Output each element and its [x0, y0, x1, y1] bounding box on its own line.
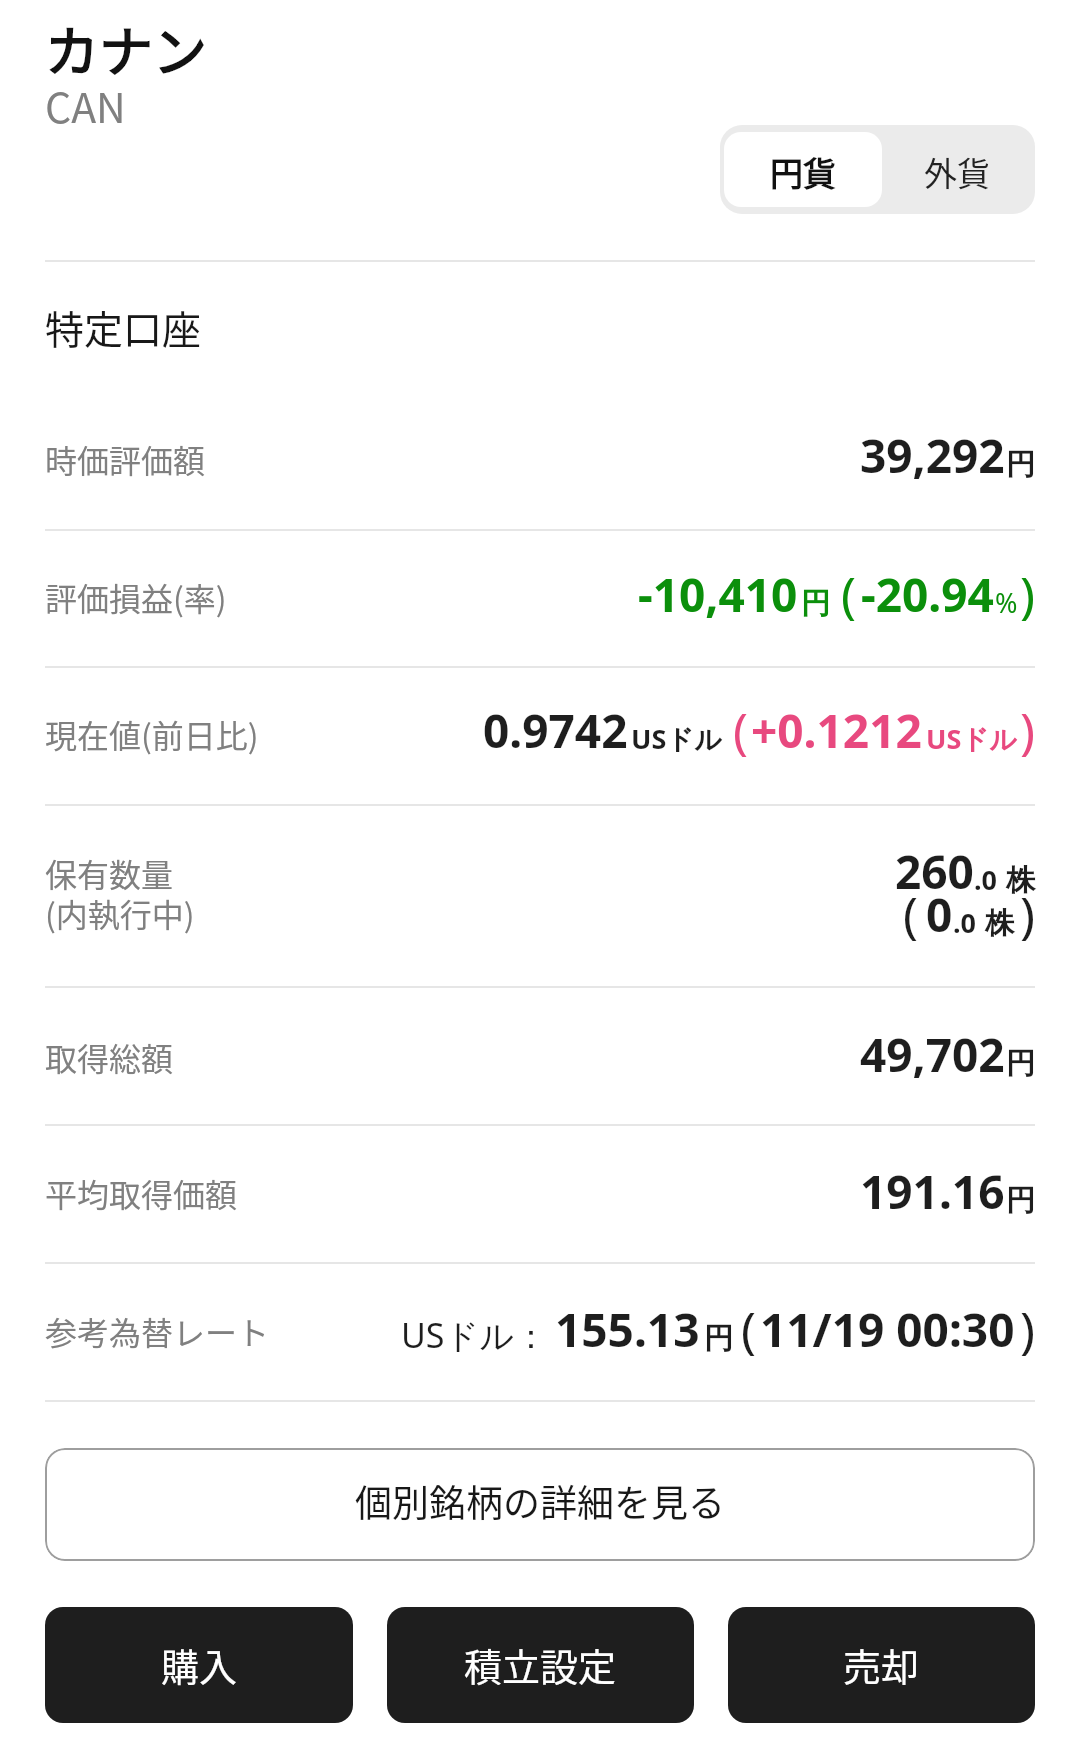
staticText: 191.16 [860, 1160, 1005, 1223]
button[interactable]: 購入 [45, 1607, 353, 1723]
staticText: 平均取得価額 [45, 1170, 238, 1216]
staticText: +0.1212 [751, 699, 922, 762]
staticText: .0 [953, 904, 977, 941]
staticText: 株 [985, 905, 1014, 942]
staticText: 11/19 00:30 [760, 1298, 1015, 1361]
staticText: 0 [926, 883, 953, 946]
staticText: ) [1020, 560, 1035, 628]
staticText: 39,292 [860, 424, 1005, 487]
staticText: 株 [1006, 862, 1035, 899]
staticText: 円貨 [770, 148, 836, 196]
staticText: 個別銘柄の詳細を見る [355, 1474, 725, 1528]
staticText: -10,410 [638, 563, 798, 626]
staticText: ) [1020, 880, 1035, 948]
staticText: 積立設定 [464, 1637, 617, 1692]
staticText: 円 [1006, 446, 1035, 483]
staticText: 0.9742 [483, 699, 628, 762]
staticText: USドル： [401, 1312, 549, 1358]
staticText: USドル [631, 720, 722, 757]
button[interactable]: 売却 [728, 1607, 1035, 1723]
staticText: 49,702 [860, 1023, 1005, 1086]
staticText: 155.13 [555, 1298, 700, 1361]
staticText: USドル [926, 720, 1017, 757]
staticText: ( [841, 560, 856, 628]
button[interactable]: 円貨 [724, 132, 882, 207]
staticText: 時価評価額 [45, 436, 206, 482]
staticText: 円 [801, 585, 830, 622]
staticText: ( [741, 1295, 756, 1363]
staticText: ) [1020, 1295, 1035, 1363]
staticText: 外貨 [924, 148, 990, 196]
staticText: 保有数量 [45, 850, 174, 896]
staticText: 取得総額 [45, 1034, 174, 1080]
staticText: 円 [704, 1320, 733, 1357]
staticText: 購入 [161, 1637, 238, 1692]
staticText: 売却 [843, 1637, 920, 1692]
staticText: カナン [45, 9, 207, 87]
staticText: % [995, 584, 1018, 621]
button[interactable]: 外貨 [882, 132, 1031, 207]
staticText: 円 [1006, 1182, 1035, 1219]
staticText: ( [903, 880, 918, 948]
staticText: CAN [45, 75, 126, 134]
staticText: ) [1020, 696, 1035, 764]
staticText: ( [733, 696, 748, 764]
staticText: -20.94 [861, 563, 994, 626]
staticText: 円 [1006, 1045, 1035, 1082]
staticText: (内執行中) [45, 890, 195, 936]
staticText: 特定口座 [45, 299, 202, 355]
staticText: 評価損益(率) [45, 574, 227, 620]
staticText: 260 [895, 840, 974, 903]
staticText: .0 [974, 861, 998, 898]
staticText: 現在値(前日比) [45, 711, 259, 757]
button[interactable]: 個別銘柄の詳細を見る [45, 1448, 1035, 1561]
staticText: 参考為替レート [45, 1308, 270, 1354]
button[interactable]: 積立設定 [387, 1607, 694, 1723]
